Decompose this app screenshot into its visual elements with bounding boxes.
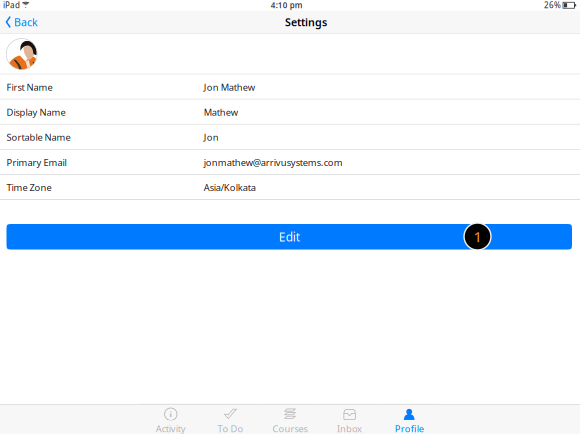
staticText: 26% — [544, 0, 561, 10]
staticText: Primary Email — [7, 156, 67, 169]
button[interactable]: Activity — [141, 404, 201, 434]
button[interactable]: Inbox — [320, 404, 379, 434]
staticText: iPad — [3, 0, 20, 10]
button[interactable]: Profile photo — [6, 38, 37, 69]
staticText: 4:10 pm — [271, 0, 303, 10]
button[interactable]: Display Name — [0, 100, 580, 125]
staticText: Back — [14, 15, 38, 29]
button[interactable]: Courses — [260, 404, 320, 434]
button[interactable]: To Do — [201, 404, 260, 434]
staticText: Time Zone — [7, 181, 52, 194]
staticText: Inbox — [337, 422, 362, 434]
staticText: Jon — [204, 131, 219, 143]
button[interactable]: Back — [0, 10, 44, 33]
staticText: Edit — [279, 229, 300, 245]
staticText: To Do — [217, 422, 243, 434]
staticText: Display Name — [7, 106, 66, 118]
staticText: Sortable Name — [7, 131, 71, 143]
staticText: Asia/Kolkata — [204, 181, 256, 194]
staticText: jonmathew@arrivusystems.com — [204, 156, 343, 169]
staticText: Mathew — [204, 106, 238, 118]
button[interactable]: Sortable Name — [0, 125, 580, 150]
staticText: Settings — [285, 15, 327, 29]
button[interactable]: First Name — [0, 74, 580, 100]
staticText: Activity — [156, 422, 186, 434]
staticText: First Name — [7, 81, 53, 93]
staticText: Jon Mathew — [204, 81, 255, 93]
button[interactable]: Time Zone — [0, 175, 580, 200]
button[interactable]: Edit — [6, 224, 572, 249]
button[interactable]: Primary Email — [0, 150, 580, 175]
staticText: 1 — [473, 227, 481, 246]
staticText: Profile — [395, 422, 424, 434]
staticText: Courses — [272, 422, 307, 434]
button[interactable]: Profile — [379, 404, 439, 434]
